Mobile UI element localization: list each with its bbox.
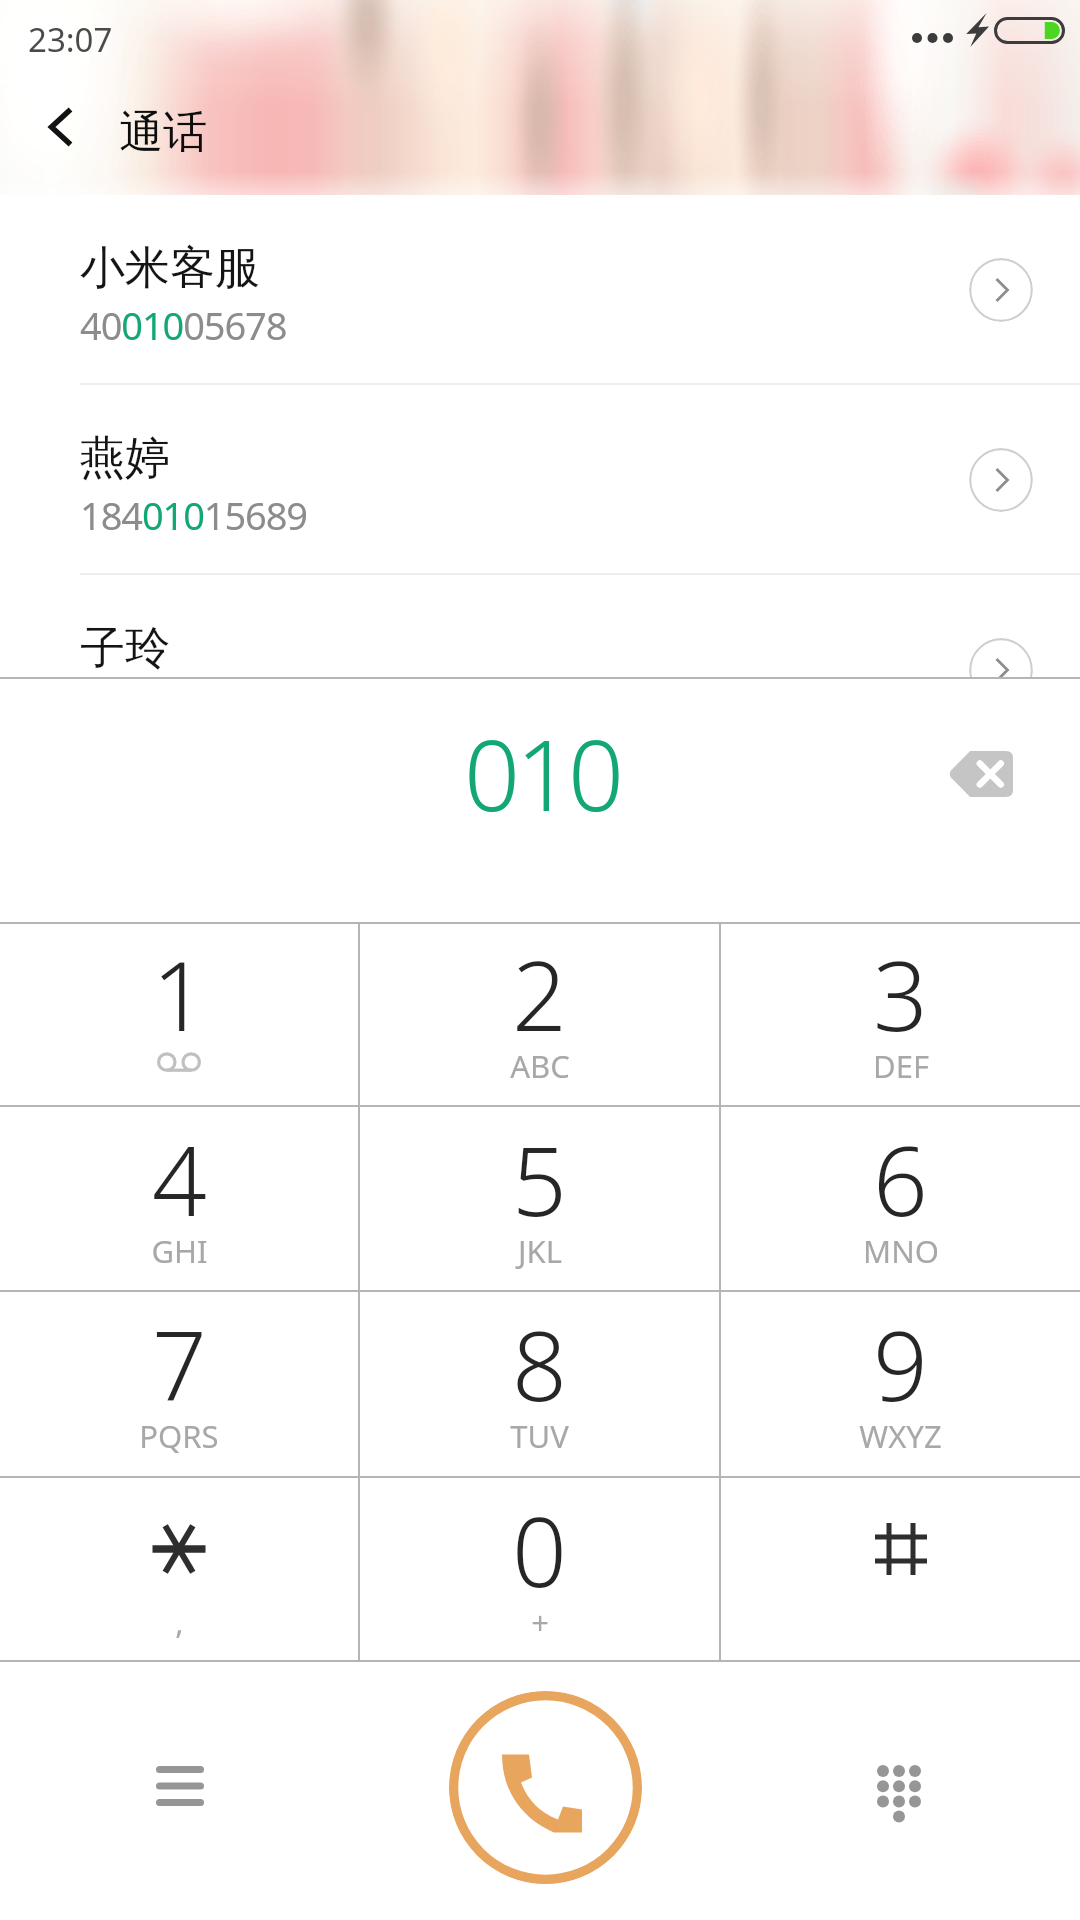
staticText: WXYZ: [859, 1415, 942, 1457]
button[interactable]: ,: [0, 1478, 358, 1662]
button[interactable]: 3: [721, 922, 1080, 1105]
staticText: PQRS: [139, 1415, 219, 1457]
staticText: 23:07: [28, 17, 113, 62]
button[interactable]: Contact details: [969, 638, 1033, 677]
staticText: 010: [464, 706, 620, 839]
staticText: TUV: [510, 1415, 569, 1457]
staticText: ,: [175, 1601, 184, 1643]
staticText: 5: [512, 1113, 567, 1244]
staticText: +: [531, 1601, 549, 1643]
staticText: 9: [873, 1298, 928, 1429]
button[interactable]: 9: [721, 1292, 1080, 1476]
button[interactable]: 7: [0, 1292, 358, 1476]
button[interactable]: Call history: [120, 1727, 240, 1847]
staticText: 6: [873, 1113, 928, 1244]
staticText: 燕婷: [80, 430, 170, 487]
staticText: 4: [152, 1113, 207, 1244]
button[interactable]: 0: [360, 1478, 719, 1662]
button[interactable]: Contact details: [969, 258, 1033, 322]
button[interactable]: 1: [0, 922, 358, 1105]
button[interactable]: 子玲: [0, 575, 1080, 677]
staticText: DEF: [873, 1045, 929, 1087]
button[interactable]: 2: [360, 922, 719, 1105]
button[interactable]: Contact details: [969, 448, 1033, 512]
staticText: 小米客服: [80, 240, 260, 297]
button[interactable]: Dialpad: [839, 1727, 959, 1847]
staticText: GHI: [151, 1230, 208, 1272]
button[interactable]: 燕婷: [0, 385, 1080, 575]
button[interactable]: Call: [449, 1691, 642, 1884]
staticText: JKL: [518, 1230, 562, 1272]
button[interactable]: Backspace: [921, 719, 1041, 829]
button[interactable]: 5: [360, 1107, 719, 1290]
button[interactable]: 8: [360, 1292, 719, 1476]
staticText: 7: [152, 1298, 207, 1429]
staticText: MNO: [863, 1230, 939, 1272]
staticText: 3: [873, 928, 928, 1059]
button[interactable]: [721, 1478, 1080, 1662]
button[interactable]: Back: [13, 79, 109, 175]
button[interactable]: 4: [0, 1107, 358, 1290]
button[interactable]: 小米客服: [0, 195, 1080, 385]
staticText: 0: [512, 1484, 567, 1615]
staticText: 通话: [119, 105, 207, 160]
button[interactable]: 6: [721, 1107, 1080, 1290]
staticText: 18401015689: [80, 489, 307, 541]
staticText: 1: [152, 928, 207, 1059]
staticText: ABC: [510, 1045, 570, 1087]
staticText: 2: [512, 928, 567, 1059]
staticText: 子玲: [80, 620, 170, 677]
staticText: 4001005678: [80, 299, 287, 351]
staticText: 8: [512, 1298, 567, 1429]
